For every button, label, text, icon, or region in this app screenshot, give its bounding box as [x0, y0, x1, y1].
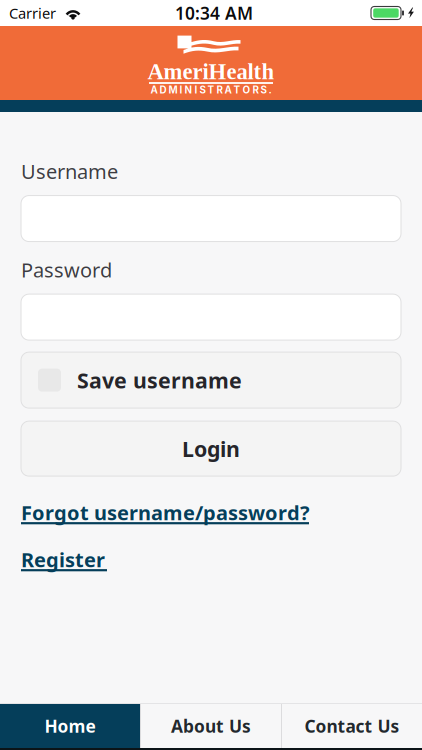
staticText: Login [182, 434, 240, 463]
staticText: Password [21, 257, 112, 283]
staticText: 10:34 AM [175, 1, 253, 24]
button[interactable]: Forgot username/password? [21, 499, 309, 525]
staticText: Save username [77, 366, 242, 394]
staticText: AmeriHealth [147, 59, 274, 84]
button[interactable]: About Us [141, 704, 281, 748]
button[interactable]: Save username [21, 352, 401, 408]
staticText: Contact Us [304, 714, 399, 737]
button[interactable]: Register [21, 546, 107, 572]
staticText: Carrier [9, 3, 56, 23]
staticText: Username [21, 158, 118, 185]
button[interactable]: Home [0, 704, 140, 748]
button[interactable]: Login [21, 421, 401, 476]
staticText: Register [21, 546, 105, 573]
staticText: About Us [171, 714, 251, 737]
staticText: Forgot username/password? [21, 499, 310, 526]
staticText: A D M I N I S T R A T O R S . [150, 84, 271, 96]
button[interactable]: Contact Us [282, 704, 422, 748]
staticText: Home [44, 714, 95, 737]
